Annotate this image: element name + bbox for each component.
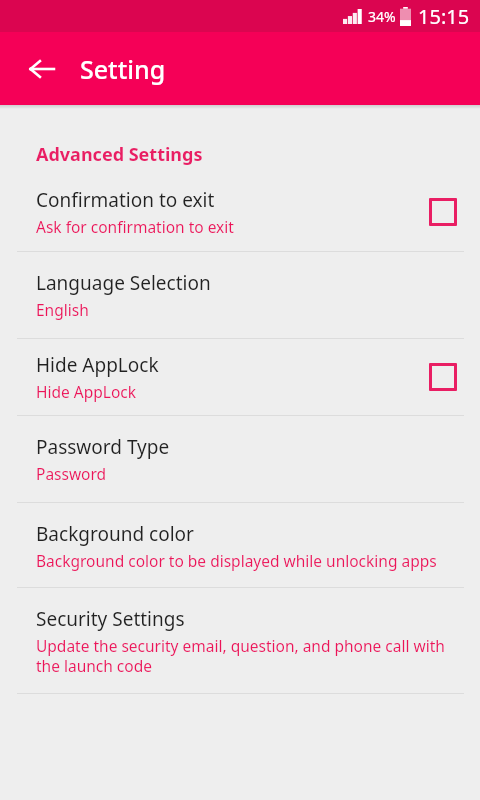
button[interactable]: Security Settings [0, 588, 480, 693]
button[interactable]: Confirmation to exit [0, 181, 480, 251]
staticText: Ask for confirmation to exit [36, 216, 234, 237]
button[interactable]: Back [18, 45, 66, 93]
staticText: 15:15 [418, 3, 470, 30]
staticText: Hide AppLock [36, 381, 136, 402]
button[interactable]: Toggle [420, 189, 466, 235]
staticText: Update the security email, question, and… [36, 635, 466, 677]
staticText: Background color [36, 521, 194, 547]
staticText: Advanced Settings [36, 142, 203, 167]
staticText: Language Selection [36, 270, 211, 296]
staticText: Hide AppLock [36, 352, 159, 378]
staticText: Setting [80, 52, 166, 86]
staticText: Background color to be displayed while u… [36, 550, 437, 571]
button[interactable]: Toggle [420, 354, 466, 400]
button[interactable]: Hide AppLock [0, 339, 480, 415]
staticText: Confirmation to exit [36, 187, 215, 213]
staticText: English [36, 299, 89, 320]
staticText: Password Type [36, 434, 170, 460]
button[interactable]: Language Selection [0, 252, 480, 338]
staticText: 34% [368, 7, 396, 26]
button[interactable]: Background color [0, 503, 480, 587]
staticText: Password [36, 463, 107, 484]
button[interactable]: Password Type [0, 416, 480, 502]
staticText: Security Settings [36, 606, 185, 632]
